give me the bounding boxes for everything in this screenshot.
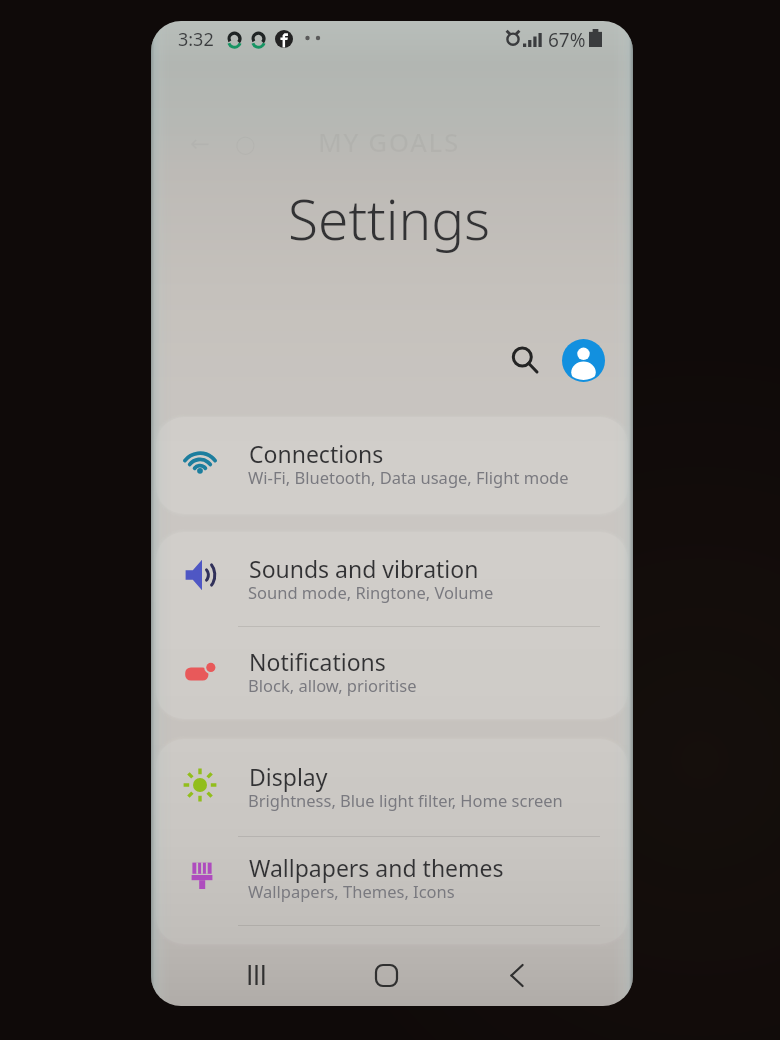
button[interactable]: Search xyxy=(505,340,545,380)
staticText: Sounds and vibration xyxy=(249,553,479,584)
button[interactable] xyxy=(156,828,628,922)
staticText: Display xyxy=(249,761,328,792)
button[interactable] xyxy=(156,626,628,720)
button[interactable]: Back xyxy=(477,950,557,1000)
staticText: Brightness, Blue light filter, Home scre… xyxy=(248,789,563,811)
staticText: Block, allow, prioritise xyxy=(248,674,417,696)
staticText: Wallpapers and themes xyxy=(249,852,504,883)
staticText: Connections xyxy=(249,438,384,469)
staticText: 3:32 xyxy=(178,27,214,49)
staticText: Sound mode, Ringtone, Volume xyxy=(248,581,494,603)
staticText: 67% xyxy=(548,27,586,49)
staticText: Wallpapers, Themes, Icons xyxy=(248,880,455,902)
button[interactable]: Home xyxy=(346,950,426,1000)
staticText: Wi-Fi, Bluetooth, Data usage, Flight mod… xyxy=(248,466,569,488)
button[interactable] xyxy=(156,528,628,622)
button[interactable] xyxy=(156,415,628,509)
staticText: Settings xyxy=(151,181,630,256)
button[interactable]: Recents xyxy=(216,950,296,1000)
button[interactable] xyxy=(156,738,628,832)
staticText: Notifications xyxy=(249,646,386,677)
button[interactable]: Account xyxy=(561,338,605,382)
